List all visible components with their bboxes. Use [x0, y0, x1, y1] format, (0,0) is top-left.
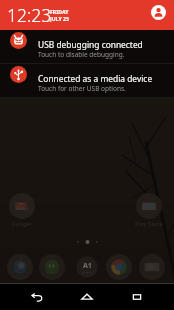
button[interactable]: Google [0, 193, 43, 228]
button[interactable]: Phone [7, 254, 33, 280]
button[interactable]: Home [74, 284, 100, 310]
button[interactable]: Back [24, 284, 50, 310]
staticText: Touch to disable debugging. [38, 50, 125, 59]
button[interactable]: Camera [139, 254, 165, 280]
staticText: A1 [83, 261, 92, 271]
staticText: JULY 25 [50, 15, 69, 22]
button[interactable]: Hangouts [39, 254, 65, 280]
button[interactable]: Recent apps [124, 284, 150, 310]
button[interactable]: Connected as a media device [0, 64, 174, 98]
staticText: Google [11, 220, 32, 228]
button[interactable]: All apps [74, 254, 100, 280]
staticText: USB debugging connected [38, 39, 143, 50]
button[interactable]: User profile [151, 5, 166, 20]
button[interactable]: Chrome [106, 254, 132, 280]
button[interactable]: Play Store [127, 193, 170, 228]
staticText: Touch for other USB options. [38, 84, 126, 93]
staticText: Connected as a media device [38, 73, 153, 84]
staticText: FRIDAY [50, 8, 69, 15]
staticText: Play Store [135, 220, 163, 228]
button[interactable]: USB debugging connected [0, 30, 174, 64]
staticText: 12:23 [7, 3, 52, 27]
